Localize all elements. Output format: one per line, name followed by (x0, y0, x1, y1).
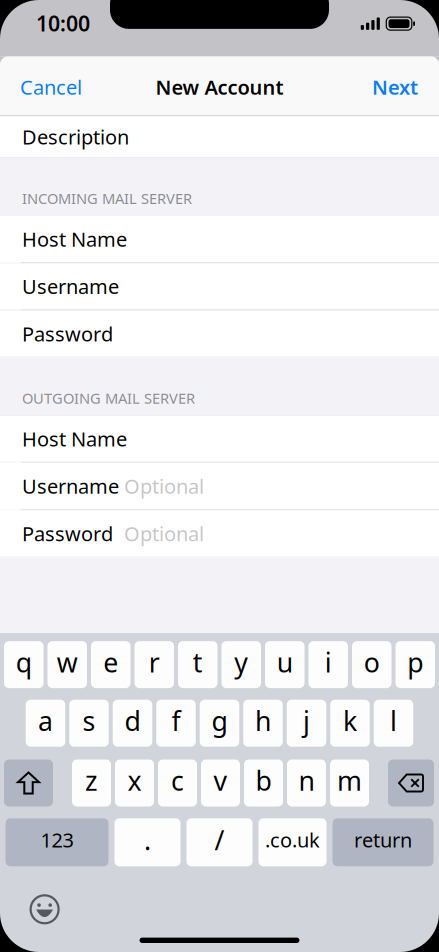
button[interactable]: b (244, 759, 283, 806)
button[interactable]: Description (0, 116, 439, 157)
button[interactable]: w (47, 641, 87, 688)
button[interactable]: s (69, 700, 109, 747)
button[interactable]: Password (0, 510, 439, 557)
staticText: Host Name (22, 226, 127, 252)
button[interactable]: f (156, 700, 196, 747)
staticText: Password (22, 520, 113, 547)
button[interactable]: Cancel (0, 61, 96, 113)
staticText: z (85, 763, 98, 798)
button[interactable]: k (330, 700, 370, 747)
staticText: 123 (40, 826, 73, 853)
button[interactable]: a (26, 700, 65, 747)
staticText: OUTGOING MAIL SERVER (22, 388, 195, 408)
staticText: 10:00 (36, 9, 90, 37)
button[interactable]: y (221, 641, 261, 688)
button[interactable]: h (243, 700, 283, 747)
button[interactable]: v (201, 759, 240, 806)
staticText: f (171, 703, 180, 738)
staticText: Username (22, 273, 119, 300)
button[interactable]: Password (0, 310, 439, 357)
staticText: i (325, 644, 332, 680)
button[interactable]: / (186, 818, 252, 866)
staticText: t (193, 644, 203, 680)
staticText: Description (22, 123, 129, 150)
staticText: e (103, 644, 118, 680)
staticText: return (354, 826, 412, 853)
staticText: INCOMING MAIL SERVER (22, 188, 192, 208)
button[interactable]: 123 (5, 818, 108, 866)
staticText: j (303, 703, 310, 738)
staticText: New Account (155, 74, 283, 100)
staticText: w (57, 644, 78, 680)
button[interactable]: p (395, 641, 435, 688)
button[interactable]: Shift (4, 759, 53, 806)
button[interactable]: m (330, 759, 369, 806)
staticText: Password (22, 320, 113, 347)
staticText: Optional (124, 520, 204, 547)
staticText: Host Name (22, 425, 127, 452)
staticText: m (337, 763, 362, 798)
button[interactable]: x (115, 759, 154, 806)
staticText: / (214, 822, 224, 857)
button[interactable]: Host Name (0, 416, 439, 462)
button[interactable]: Emoji keyboard (29, 893, 61, 925)
button[interactable]: d (113, 700, 152, 747)
button[interactable]: . (114, 818, 180, 866)
button[interactable]: o (352, 641, 391, 688)
staticText: s (82, 703, 95, 738)
staticText: a (38, 703, 53, 738)
button[interactable]: g (200, 700, 239, 747)
staticText: v (213, 763, 227, 798)
button[interactable]: c (158, 759, 197, 806)
staticText: g (211, 703, 227, 738)
button[interactable]: Delete (388, 759, 434, 806)
button[interactable]: l (374, 700, 413, 747)
staticText: u (277, 644, 293, 680)
button[interactable]: j (287, 700, 326, 747)
button[interactable]: Host Name (0, 216, 439, 262)
staticText: .co.uk (265, 826, 320, 853)
button[interactable]: return (332, 818, 433, 866)
button[interactable]: .co.uk (258, 818, 326, 866)
staticText: Cancel (20, 74, 82, 100)
button[interactable]: r (134, 641, 174, 688)
staticText: k (343, 703, 357, 738)
staticText: d (124, 703, 140, 738)
staticText: . (144, 822, 151, 857)
staticText: q (16, 644, 32, 680)
staticText: Username (22, 473, 119, 499)
button[interactable]: Username (0, 263, 439, 309)
button[interactable]: Username (0, 463, 439, 509)
staticText: p (407, 644, 423, 680)
button[interactable]: Next (358, 61, 439, 113)
button[interactable]: e (91, 641, 130, 688)
staticText: r (149, 644, 160, 680)
button[interactable]: i (308, 641, 348, 688)
staticText: c (171, 763, 184, 798)
staticText: o (364, 644, 380, 680)
button[interactable]: z (72, 759, 111, 806)
staticText: Optional (124, 473, 204, 499)
button[interactable]: n (287, 759, 326, 806)
staticText: n (298, 763, 314, 798)
button[interactable]: u (265, 641, 304, 688)
staticText: h (255, 703, 271, 738)
staticText: b (255, 763, 271, 798)
staticText: Next (372, 74, 418, 100)
staticText: x (127, 763, 141, 798)
staticText: y (234, 644, 248, 680)
button[interactable]: q (4, 641, 43, 688)
staticText: l (390, 703, 397, 738)
button[interactable]: t (178, 641, 217, 688)
